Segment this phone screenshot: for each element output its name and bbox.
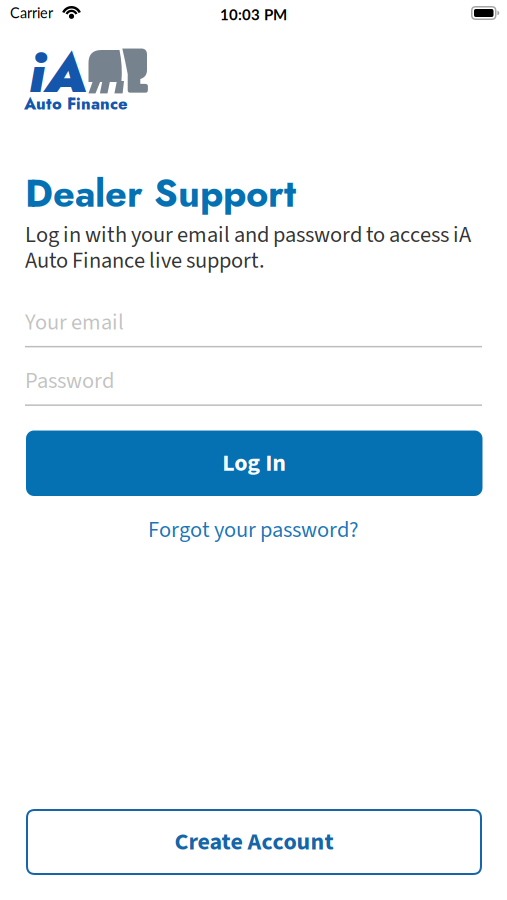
button[interactable]: Log In xyxy=(26,430,482,496)
staticText: Log In xyxy=(222,446,286,480)
staticText: Dealer Support xyxy=(25,166,296,221)
button[interactable]: Create Account xyxy=(26,809,482,875)
staticText: 10:03 PM xyxy=(220,5,287,24)
staticText: Auto Finance xyxy=(24,92,128,115)
staticText: iA xyxy=(29,32,87,113)
staticText: Carrier xyxy=(10,4,53,21)
staticText: Create Account xyxy=(174,825,333,859)
staticText: Your email xyxy=(25,306,124,338)
staticText: Password xyxy=(25,365,114,397)
button[interactable]: Password xyxy=(25,365,482,406)
staticText: Log in with your email and password to a… xyxy=(25,219,471,277)
button[interactable]: Your email xyxy=(25,306,482,347)
button[interactable]: Forgot your password? xyxy=(148,514,359,546)
staticText: Forgot your password? xyxy=(148,514,359,546)
